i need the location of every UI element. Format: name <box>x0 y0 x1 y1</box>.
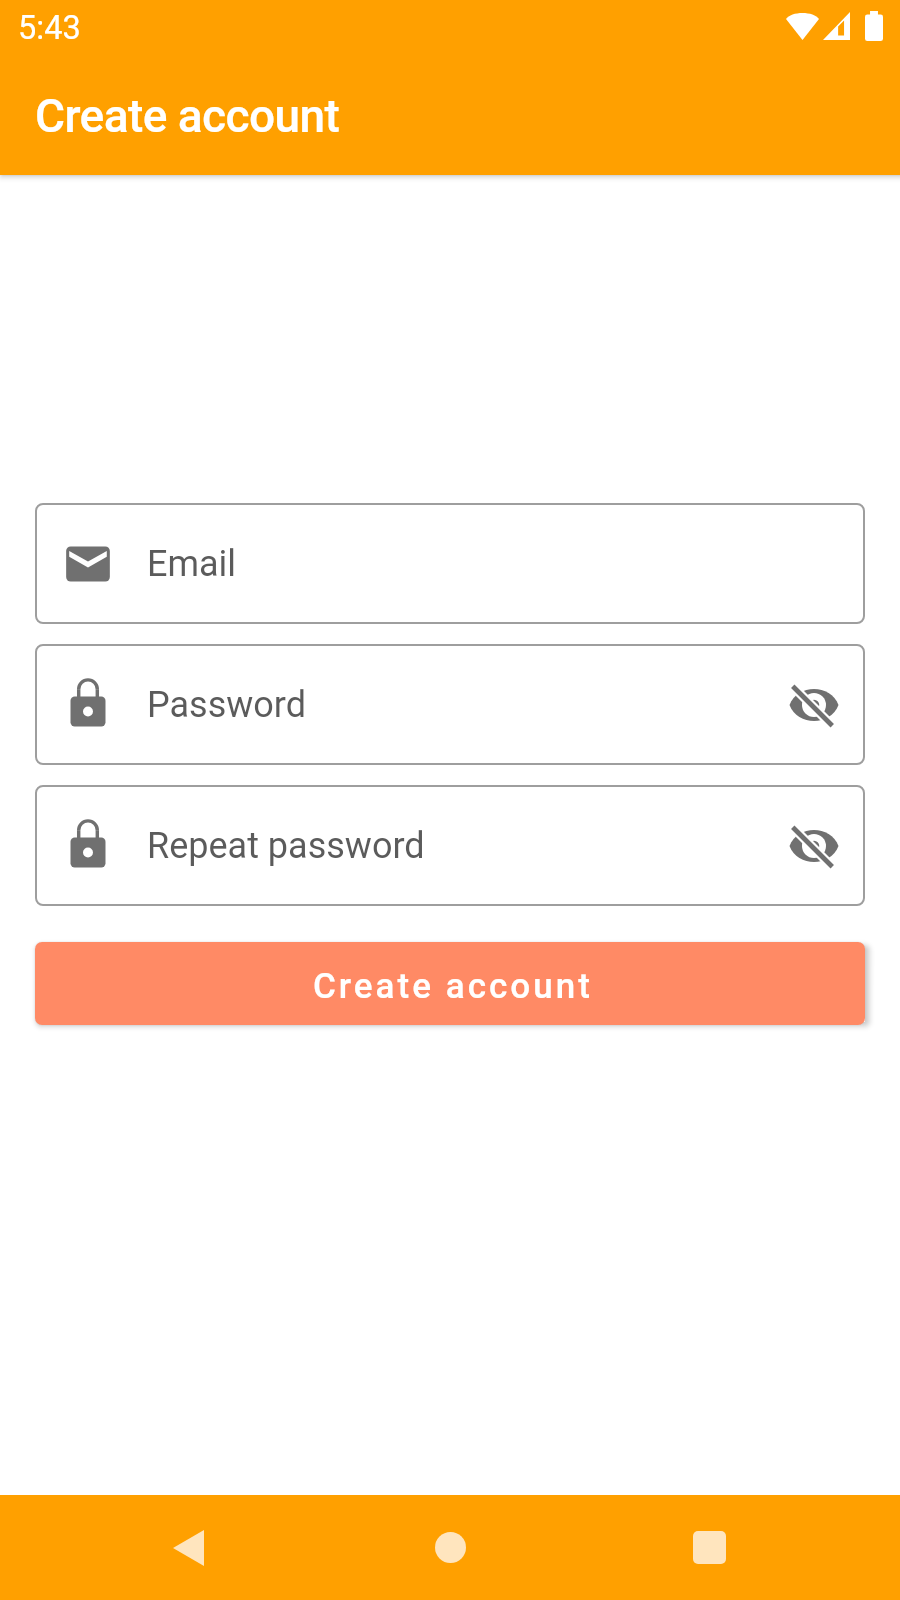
staticText: Password <box>147 684 778 726</box>
staticText: Email <box>147 543 865 585</box>
button[interactable]: Create account <box>35 942 865 1025</box>
button[interactable]: Home <box>390 1495 510 1600</box>
button[interactable]: Password <box>35 644 865 765</box>
button[interactable]: Email <box>35 503 865 624</box>
staticText: Repeat password <box>147 825 778 867</box>
staticText: Create account <box>313 966 593 1007</box>
button[interactable]: Show password <box>778 669 850 741</box>
staticText: 5:43 <box>18 9 81 47</box>
button[interactable]: Recent apps <box>649 1495 769 1600</box>
staticText: Create account <box>35 89 340 143</box>
button[interactable]: Show password <box>778 810 850 882</box>
button[interactable]: Repeat password <box>35 785 865 906</box>
button[interactable]: Back <box>128 1495 248 1600</box>
